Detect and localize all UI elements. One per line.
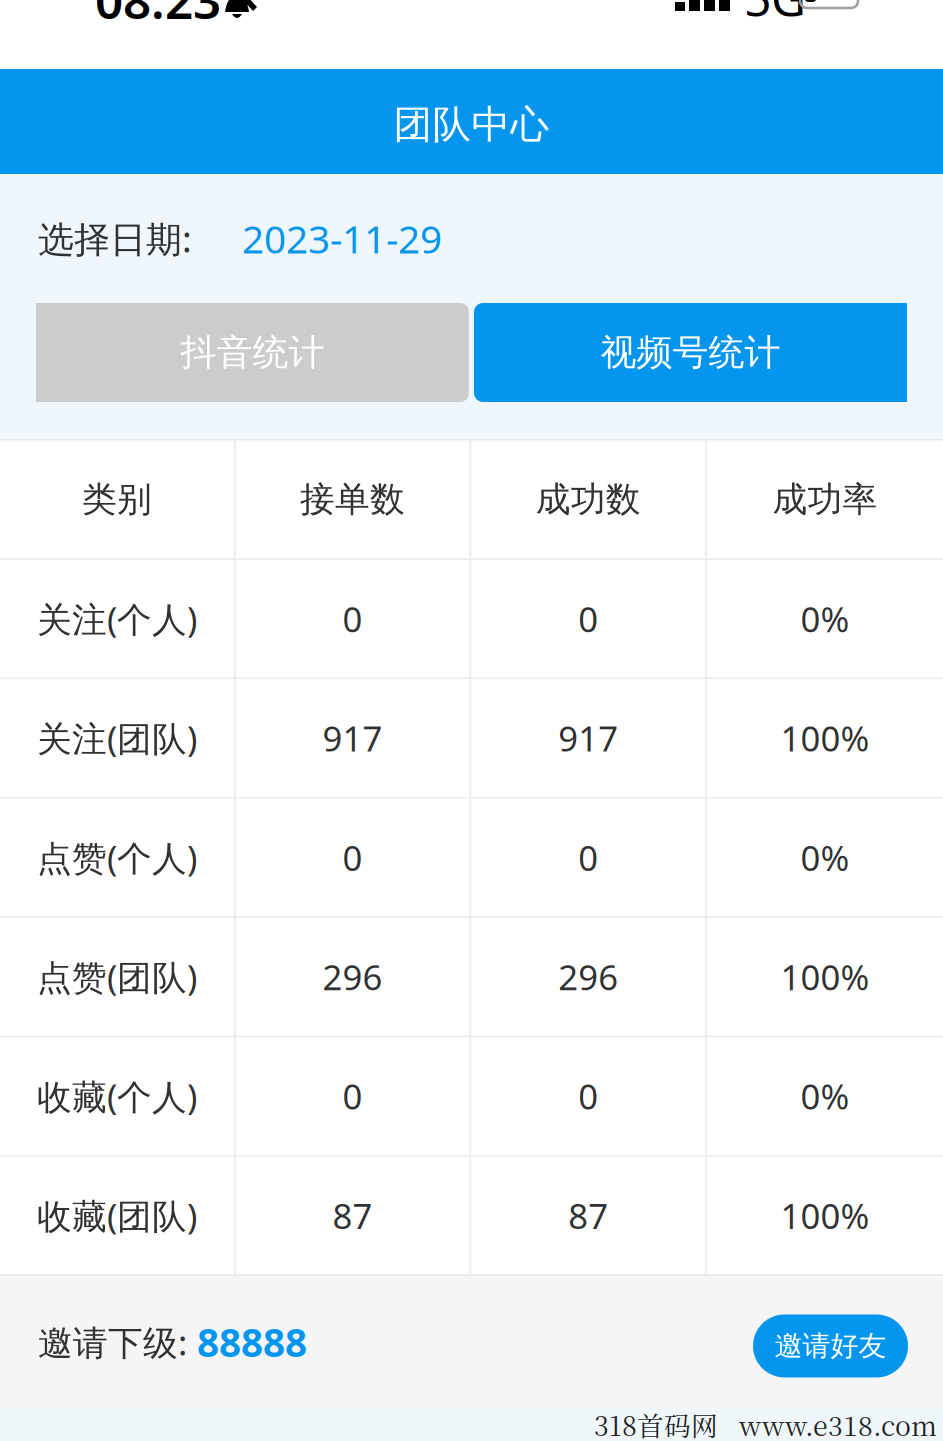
- staticText: 视频号统计: [600, 330, 780, 375]
- staticText: 邀请好友: [774, 1329, 886, 1363]
- staticText: 成功数: [536, 478, 641, 521]
- staticText: 选择日期:: [38, 215, 192, 262]
- staticText: 抖音统计: [180, 330, 324, 375]
- staticText: 邀请下级:: [38, 1319, 187, 1365]
- staticText: 类别: [82, 478, 152, 521]
- staticText: 关注(个人): [37, 596, 197, 642]
- staticText: 成功率: [772, 478, 877, 521]
- staticText: 0: [578, 834, 598, 880]
- staticText: 87: [568, 1192, 608, 1238]
- button[interactable]: 选择日期:: [0, 174, 943, 303]
- staticText: 0: [578, 596, 598, 642]
- staticText: 接单数: [300, 478, 405, 521]
- staticText: 5G: [744, 0, 806, 30]
- button[interactable]: 抖音统计: [36, 303, 469, 402]
- staticText: 0%: [800, 834, 849, 880]
- staticText: 关注(团队): [37, 715, 197, 761]
- staticText: 0: [343, 1073, 363, 1119]
- staticText: 100%: [780, 715, 869, 761]
- staticText: 0%: [800, 596, 849, 642]
- staticText: 0%: [800, 1073, 849, 1119]
- staticText: 点赞(团队): [37, 954, 197, 1000]
- staticText: 88888: [187, 1316, 307, 1368]
- staticText: 917: [558, 715, 618, 761]
- staticText: 点赞(个人): [37, 834, 197, 880]
- staticText: 296: [323, 954, 383, 1000]
- staticText: 收藏(个人): [37, 1073, 197, 1119]
- staticText: 收藏(团队): [37, 1192, 197, 1238]
- staticText: 0: [578, 1073, 598, 1119]
- staticText: 0: [343, 834, 363, 880]
- staticText: 2023-11-29: [192, 213, 442, 264]
- button[interactable]: 视频号统计: [474, 303, 907, 402]
- staticText: 08:23: [95, 0, 221, 32]
- staticText: 0: [343, 596, 363, 642]
- staticText: 100%: [780, 954, 869, 1000]
- button[interactable]: 邀请好友: [753, 1314, 908, 1377]
- staticText: 100%: [780, 1192, 869, 1238]
- staticText: 318首码网 www.e318.com: [594, 1405, 937, 1441]
- staticText: 团队中心: [393, 101, 549, 148]
- staticText: 917: [323, 715, 383, 761]
- staticText: 87: [333, 1192, 373, 1238]
- staticText: 296: [558, 954, 618, 1000]
